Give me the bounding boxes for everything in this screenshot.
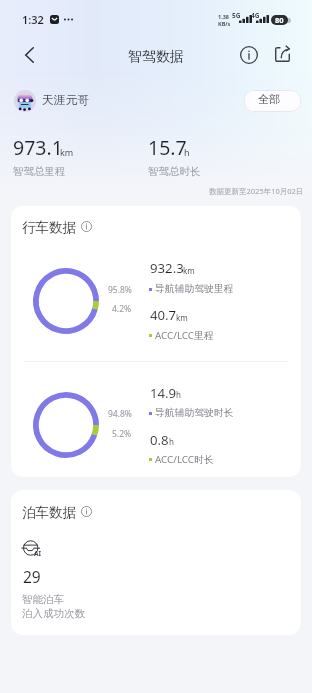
staticText: h [176,389,181,400]
staticText: 行车数据 [22,219,77,236]
staticText: 29 [23,566,41,587]
staticText: 0.8 [150,431,169,449]
button[interactable]: Info [230,36,267,73]
staticText: 智驾总里程 [13,165,66,178]
staticText: 智驾数据 [128,48,184,66]
staticText: 泊入成功次数 [22,607,85,620]
staticText: 973.1 [13,134,63,161]
staticText: 5.2% [112,428,132,440]
button[interactable]: Share [264,36,301,73]
staticText: h [169,436,174,447]
staticText: 932.3 [150,259,184,277]
staticText: 智能泊车 [22,593,64,606]
staticText: 智驾总时长 [148,165,201,178]
staticText: KB/s [218,20,231,27]
staticText: ACC/LCC里程 [155,329,214,342]
staticText: 4G [251,11,260,20]
staticText: 80 [275,15,284,25]
staticText: 4.2% [112,303,132,315]
button[interactable]: 全部 [244,90,301,112]
staticText: 15.7 [148,134,187,161]
staticText: 1:32 [22,12,44,27]
staticText: 94.8% [108,408,132,420]
staticText: h [184,146,190,158]
staticText: AI [34,549,42,558]
staticText: 1.38 [218,13,229,20]
staticText: km [183,265,195,276]
staticText: 天涯元哥 [42,93,90,108]
staticText: km [176,312,188,323]
staticText: ACC/LCC时长 [155,453,214,466]
staticText: km [60,146,74,158]
staticText: 导航辅助驾驶里程 [155,283,234,295]
button[interactable]: Back [10,36,48,74]
staticText: 40.7 [150,306,177,324]
staticText: 泊车数据 [22,504,77,521]
staticText: 导航辅助驾驶时长 [155,407,234,419]
staticText: 5G [232,11,241,20]
staticText: 全部 [258,92,280,106]
staticText: 14.9 [150,384,177,402]
staticText: 数据更新至2025年10月02日 [209,186,304,196]
staticText: 95.8% [108,284,132,296]
